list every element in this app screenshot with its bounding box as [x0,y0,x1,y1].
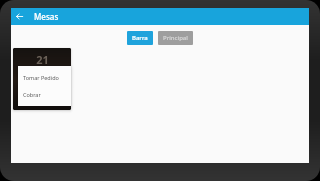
staticText: Barra [132,34,148,42]
button[interactable]: 21 [13,48,71,110]
button[interactable]: Barra [127,31,153,45]
staticText: Cobrar [23,91,41,98]
staticText: Principal [163,34,188,42]
button[interactable]: Principal [158,31,193,45]
staticText: 21 [36,52,49,67]
button[interactable]: Tomar Pedido [18,69,71,86]
button[interactable]: Cobrar [18,86,71,103]
button[interactable]: Back [11,8,28,25]
staticText: Mesas [34,11,59,22]
staticText: Tomar Pedido [23,74,59,81]
